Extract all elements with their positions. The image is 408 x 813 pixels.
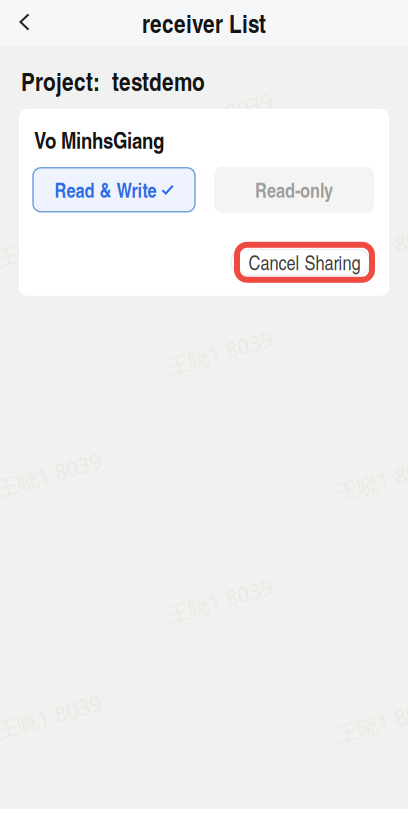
staticText: Read-only [255, 176, 333, 204]
staticText: Project: testdemo [21, 63, 205, 99]
button[interactable]: Back [0, 0, 46, 46]
staticText: Cancel Sharing [248, 249, 360, 276]
staticText: receiver List [142, 5, 266, 41]
staticText: 王晓1 8039 [0, 230, 103, 259]
staticText: Vo MinhsGiang [34, 124, 164, 156]
button[interactable]: Read & Write [33, 168, 195, 212]
staticText: Read & Write [54, 176, 156, 204]
staticText: 王晓1 8039 [335, 232, 408, 261]
button[interactable]: Cancel Sharing [237, 245, 372, 280]
button[interactable]: Read-only [214, 167, 374, 213]
staticText: 王晓1 8039 [166, 100, 274, 129]
